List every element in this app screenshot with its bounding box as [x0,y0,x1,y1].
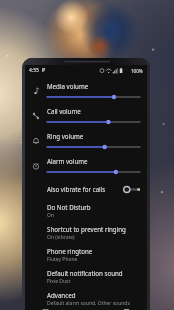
staticText: Pixie Dust [47,278,71,285]
staticText: Do Not Disturb [47,203,91,211]
staticText: Ring volume [47,132,84,140]
staticText: Shortcut to prevent ringing [47,225,126,233]
staticText: Default notification sound [47,269,123,277]
staticText: 100% [131,68,143,74]
button[interactable]: Default notification sound [25,266,147,288]
staticText: Phone ringtone [47,247,93,255]
button[interactable]: Phone ringtone [25,244,147,266]
staticText: Default alarm sound, Other sounds and vi… [47,300,140,307]
staticText: Advanced [47,291,76,299]
staticText: On [47,212,54,219]
staticText: 4:55 [29,67,39,74]
button[interactable]: Also vibrate for calls [25,178,147,200]
button[interactable]: Shortcut to prevent ringing [25,222,147,244]
button[interactable]: Do Not Disturb [25,200,147,222]
staticText: P [42,67,46,74]
button[interactable]: Call volume [25,103,147,128]
other: Vibrate toggle [123,185,140,194]
button[interactable]: Ring volume [25,128,147,153]
staticText: Media volume [47,82,89,90]
staticText: Also vibrate for calls [47,185,106,193]
staticText: Flutey Phone [47,256,78,263]
button[interactable]: Advanced [25,288,147,310]
button[interactable]: Alarm volume [25,153,147,178]
staticText: On (vibrate) [47,234,75,241]
button[interactable]: Media volume [25,78,147,103]
staticText: Call volume [47,107,81,115]
staticText: Alarm volume [47,157,88,165]
